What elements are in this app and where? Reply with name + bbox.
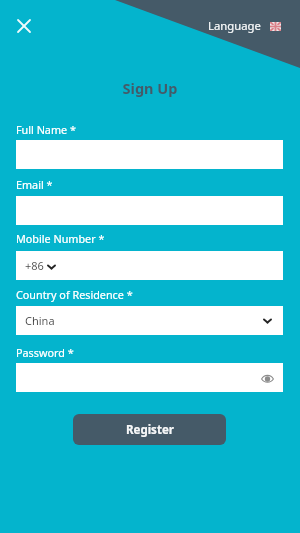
staticText: Sign Up: [0, 78, 300, 98]
button[interactable]: +86: [16, 251, 283, 280]
staticText: Full Name *: [16, 122, 76, 137]
staticText: Language: [208, 18, 261, 33]
staticText: Password *: [16, 345, 74, 360]
staticText: Mobile Number *: [16, 231, 105, 246]
button[interactable]: Register: [73, 414, 226, 445]
staticText: China: [25, 313, 55, 328]
staticText: Email *: [16, 177, 53, 192]
staticText: Register: [126, 422, 174, 438]
button[interactable]: Language: [208, 14, 281, 36]
button[interactable]: Show password: [16, 363, 283, 392]
staticText: +86: [25, 258, 44, 273]
staticText: Country of Residence *: [16, 287, 133, 302]
button[interactable]: Show password: [261, 374, 274, 383]
button[interactable]: Close: [15, 17, 33, 35]
button[interactable]: China: [16, 306, 283, 335]
